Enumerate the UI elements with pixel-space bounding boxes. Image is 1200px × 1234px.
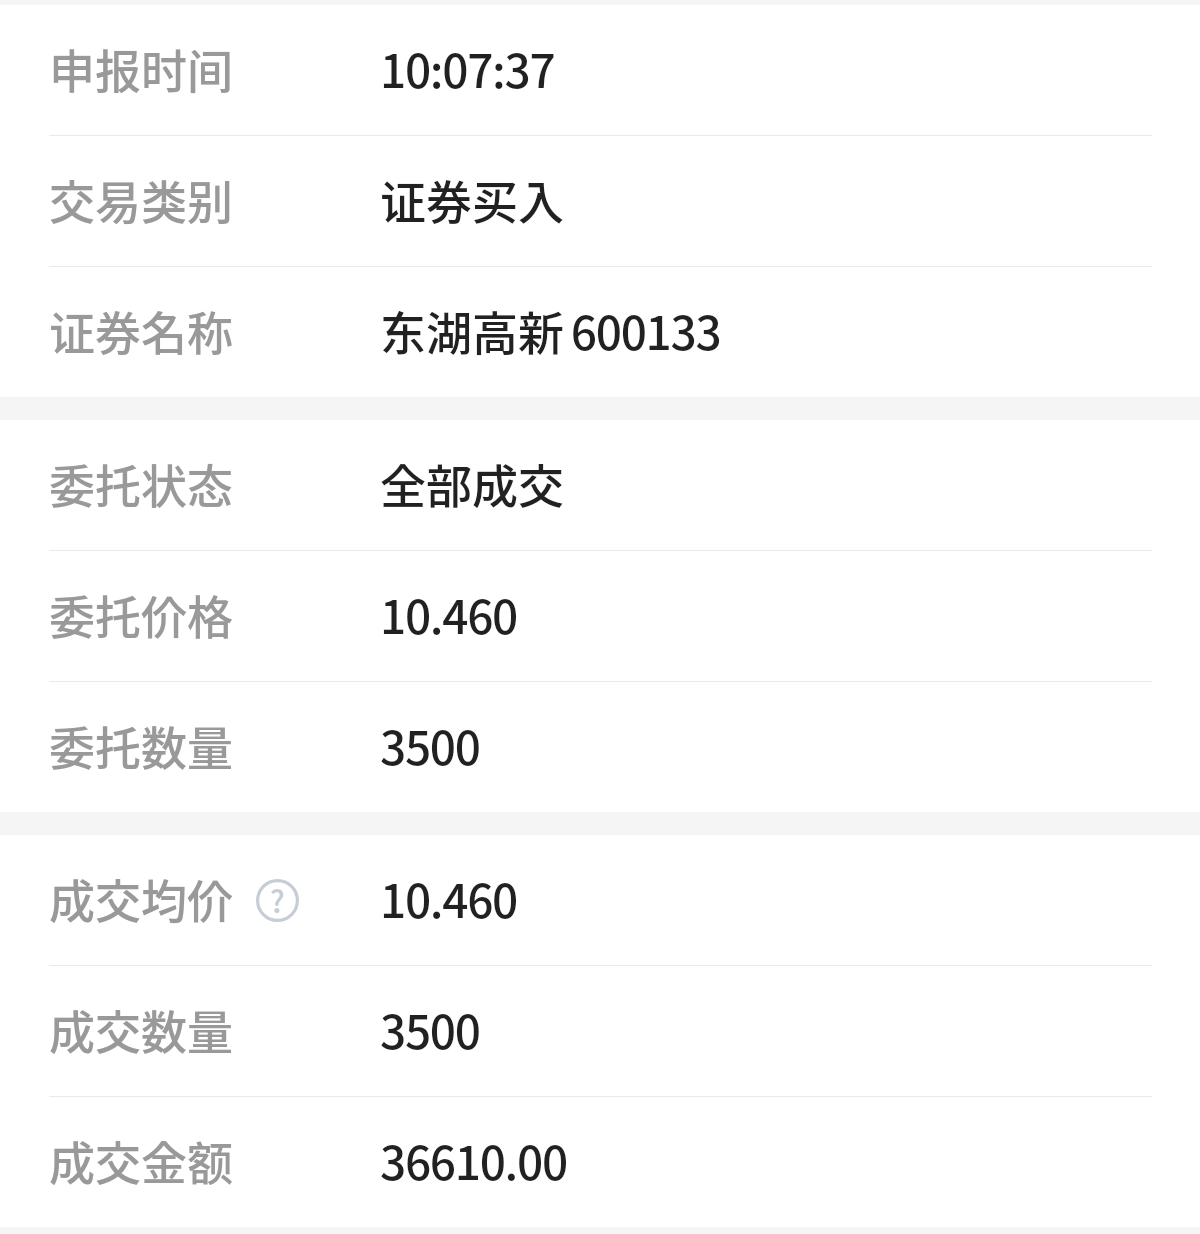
button[interactable]: 委托数量 — [0, 682, 1200, 812]
staticText: 证券买入 — [380, 166, 564, 233]
button[interactable]: 成交金额 — [0, 1097, 1200, 1227]
staticText: 委托数量 — [49, 712, 233, 779]
staticText: 委托价格 — [49, 581, 233, 648]
staticText: 3500 — [380, 712, 480, 779]
button[interactable]: 成交数量 — [0, 966, 1200, 1096]
staticText: 10.460 — [380, 865, 518, 932]
button[interactable]: 交易类别 — [0, 136, 1200, 266]
button[interactable]: 委托价格 — [0, 551, 1200, 681]
staticText: 东湖高新 600133 — [380, 297, 721, 364]
staticText: 成交金额 — [49, 1127, 233, 1194]
staticText: 成交数量 — [49, 996, 233, 1063]
button[interactable]: 成交均价 — [0, 835, 1200, 965]
staticText: 10.460 — [380, 581, 518, 648]
staticText: 交易类别 — [49, 166, 233, 233]
staticText: 证券名称 — [49, 297, 233, 364]
staticText: 36610.00 — [380, 1127, 567, 1194]
button[interactable]: 委托状态 — [0, 420, 1200, 550]
button[interactable]: 申报时间 — [0, 5, 1200, 135]
staticText: 申报时间 — [49, 35, 233, 102]
button[interactable]: 证券名称 — [0, 267, 1200, 397]
staticText: 委托状态 — [49, 450, 233, 517]
button[interactable]: What is average traded price — [256, 879, 299, 922]
staticText: 3500 — [380, 996, 480, 1063]
staticText: 成交均价 — [49, 865, 233, 932]
staticText: 全部成交 — [380, 450, 564, 517]
staticText: ? — [270, 878, 285, 921]
staticText: 10:07:37 — [380, 35, 555, 102]
